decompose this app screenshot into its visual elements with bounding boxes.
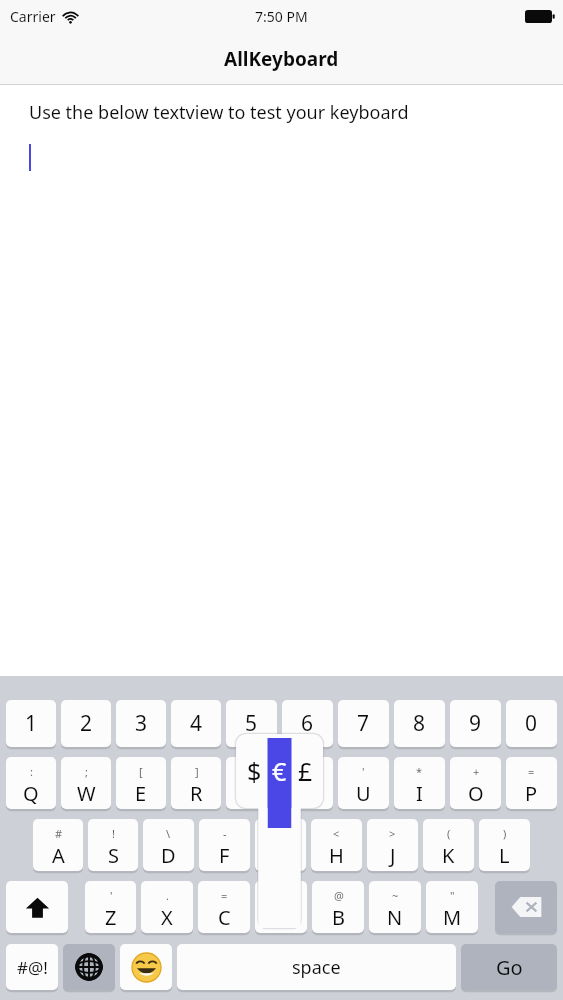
staticText: A xyxy=(52,842,65,869)
staticText: R xyxy=(190,780,203,807)
staticText: ( xyxy=(447,826,451,841)
button[interactable]: 5 xyxy=(226,700,277,747)
staticText: £ xyxy=(298,754,313,788)
button[interactable]: > xyxy=(367,819,418,871)
staticText: H xyxy=(329,842,344,869)
button[interactable]: ' xyxy=(338,757,389,809)
button[interactable]: 9 xyxy=(450,700,501,747)
button[interactable]: _ xyxy=(255,819,306,871)
staticText: = xyxy=(221,888,228,903)
staticText: B xyxy=(332,904,345,931)
staticText: Use the below textview to test your keyb… xyxy=(29,100,409,125)
button[interactable]: \ xyxy=(143,819,194,871)
staticText: Z xyxy=(105,904,117,931)
button[interactable]: space xyxy=(177,944,456,990)
staticText: W xyxy=(77,780,96,807)
staticText: . xyxy=(166,888,169,903)
button[interactable]: 8 xyxy=(394,700,445,747)
button[interactable]: Emoji xyxy=(120,944,172,990)
staticText: U xyxy=(356,780,371,807)
button[interactable]: [ xyxy=(116,757,166,809)
button[interactable]: 4 xyxy=(171,700,221,747)
button[interactable]: 0 xyxy=(506,700,557,747)
staticText: : xyxy=(30,764,33,779)
staticText: 0 xyxy=(525,709,538,738)
staticText: Y xyxy=(302,780,314,807)
staticText: Carrier xyxy=(10,7,56,26)
button[interactable]: # xyxy=(33,819,83,871)
staticText: 3 xyxy=(135,709,148,738)
button[interactable]: 7 xyxy=(338,700,389,747)
staticText: I xyxy=(416,780,423,807)
staticText: L xyxy=(499,842,510,869)
staticText: % xyxy=(303,764,313,779)
button[interactable]: $ xyxy=(236,734,323,808)
staticText: #@! xyxy=(17,956,48,979)
staticText: ~ xyxy=(392,888,399,903)
button[interactable]: + xyxy=(450,757,501,809)
staticText: " xyxy=(450,888,455,903)
button[interactable]: . xyxy=(141,881,193,933)
staticText: [ xyxy=(139,764,143,779)
button[interactable]: ) xyxy=(479,819,530,871)
button[interactable]: Shift xyxy=(6,881,68,933)
button[interactable]: = xyxy=(506,757,557,809)
button[interactable]: Backspace xyxy=(495,881,557,933)
button[interactable]: ! xyxy=(88,819,138,871)
staticText: # xyxy=(55,826,63,841)
staticText: O xyxy=(468,780,484,807)
staticText: S xyxy=(108,842,119,869)
staticText: + xyxy=(473,764,480,779)
button[interactable] xyxy=(255,881,307,933)
button[interactable]: " xyxy=(426,881,478,933)
staticText: ? xyxy=(250,764,255,779)
button[interactable]: - xyxy=(199,819,250,871)
button[interactable]: Switch keyboard xyxy=(63,944,115,990)
staticText: 6 xyxy=(301,709,314,738)
staticText: M xyxy=(443,904,462,931)
staticText: 8 xyxy=(413,709,426,738)
staticText: \ xyxy=(166,826,171,841)
staticText: space xyxy=(292,955,341,980)
button[interactable]: ' xyxy=(85,881,136,933)
button[interactable]: ? xyxy=(226,757,277,809)
button[interactable]: #@! xyxy=(6,944,58,990)
staticText: K xyxy=(442,842,455,869)
staticText: E xyxy=(135,780,147,807)
staticText: 5 xyxy=(245,709,258,738)
button[interactable]: 6 xyxy=(282,700,333,747)
staticText: 4 xyxy=(190,709,203,738)
staticText: 7 xyxy=(357,709,370,738)
staticText: Q xyxy=(23,780,39,807)
staticText: D xyxy=(161,842,176,869)
button[interactable]: 3 xyxy=(116,700,166,747)
staticText: - xyxy=(223,826,227,841)
button[interactable]: ; xyxy=(61,757,111,809)
staticText: ! xyxy=(112,826,115,841)
button[interactable]: < xyxy=(311,819,362,871)
staticText: < xyxy=(333,826,340,841)
button[interactable]: = xyxy=(198,881,250,933)
button[interactable]: 2 xyxy=(61,700,111,747)
button[interactable]: ] xyxy=(171,757,221,809)
button[interactable]: : xyxy=(6,757,56,809)
button[interactable]: % xyxy=(282,757,333,809)
button[interactable]: 1 xyxy=(6,700,56,747)
button[interactable]: ~ xyxy=(369,881,421,933)
staticText: = xyxy=(528,764,535,779)
staticText: 7:50 PM xyxy=(255,7,308,26)
button[interactable]: Go xyxy=(461,944,557,990)
staticText: F xyxy=(219,842,230,869)
button[interactable]: @ xyxy=(312,881,364,933)
button[interactable]: ( xyxy=(423,819,474,871)
staticText: 2 xyxy=(80,709,93,738)
staticText: _ xyxy=(278,826,283,841)
staticText: @ xyxy=(334,888,344,903)
staticText: ] xyxy=(195,764,199,779)
staticText: P xyxy=(525,780,538,807)
staticText: * xyxy=(416,764,423,779)
staticText: € xyxy=(272,754,287,788)
staticText: C xyxy=(218,904,231,931)
button[interactable]: * xyxy=(394,757,445,809)
